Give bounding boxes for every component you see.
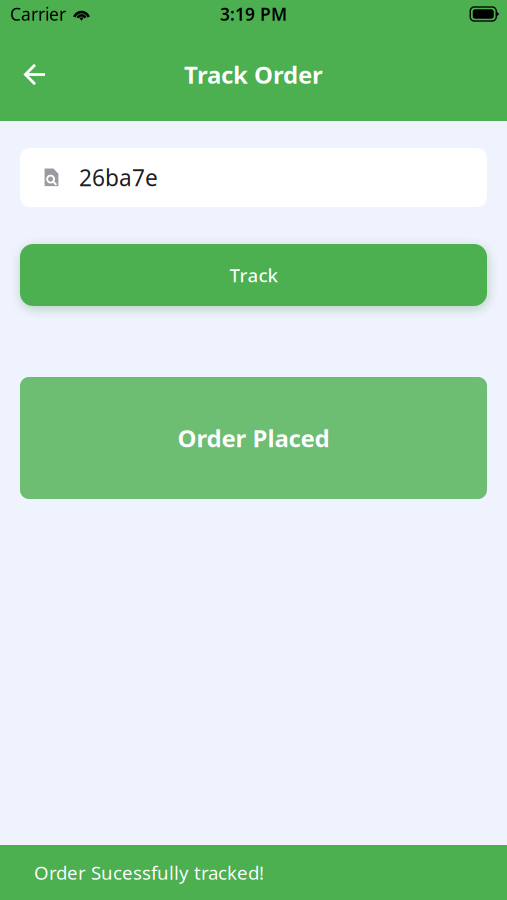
staticText: Carrier [10, 2, 66, 25]
button[interactable]: 26ba7e [0, 148, 507, 207]
staticText: Track [229, 263, 277, 287]
staticText: Order Placed [177, 422, 329, 454]
staticText: Order Sucessfully tracked! [34, 860, 264, 885]
staticText: 26ba7e [79, 162, 158, 192]
button[interactable]: Track [0, 244, 507, 306]
button[interactable]: Back [9, 48, 61, 100]
staticText: Track Order [184, 59, 323, 90]
staticText: 3:19 PM [220, 2, 287, 25]
